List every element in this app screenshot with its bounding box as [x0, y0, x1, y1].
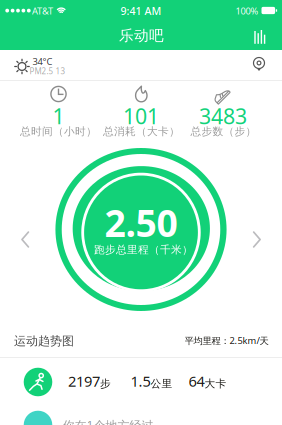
staticText: 运动趋势图 — [14, 334, 74, 348]
staticText: 1 — [52, 102, 64, 130]
button[interactable]: Statistics — [247, 23, 273, 51]
button[interactable]: 你在1个地方经过 — [0, 406, 282, 425]
staticText: 100% — [235, 5, 258, 17]
staticText: 跑步总里程（千米） — [94, 243, 193, 256]
staticText: 64大卡 — [188, 371, 226, 391]
staticText: 总步数（步） — [190, 125, 256, 138]
staticText: 1.5公里 — [130, 371, 172, 391]
staticText: 101 — [123, 102, 159, 130]
button[interactable]: Next — [245, 223, 269, 255]
staticText: 乐动吧 — [119, 26, 164, 44]
staticText: 总消耗（大卡） — [103, 125, 180, 138]
staticText: 总时间（小时） — [20, 125, 97, 138]
staticText: 9:41 AM — [120, 4, 161, 18]
button[interactable]: Previous — [13, 223, 37, 255]
staticText: 34°C — [32, 55, 52, 67]
staticText: 3483 — [199, 102, 247, 130]
staticText: AT&T — [32, 5, 53, 17]
staticText: 2.50 — [104, 198, 177, 247]
staticText: 2197步 — [68, 371, 111, 391]
button[interactable]: 2197步 — [0, 358, 282, 404]
staticText: 平均里程：2.5km/天 — [184, 334, 268, 347]
staticText: PM2.5 13 — [29, 66, 65, 76]
staticText: 你在1个地方经过 — [62, 417, 153, 425]
button[interactable]: Location — [245, 50, 273, 79]
button[interactable]: 2.50 — [53, 141, 229, 317]
